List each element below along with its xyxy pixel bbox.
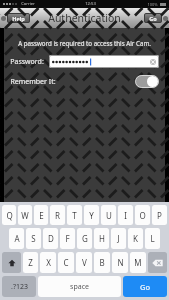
staticText: O (139, 210, 146, 221)
button[interactable]: Clear text (49, 55, 159, 68)
button[interactable]: J (111, 228, 126, 249)
button[interactable]: V (76, 252, 92, 273)
staticText: T (72, 210, 77, 221)
staticText: M (134, 257, 142, 268)
button[interactable]: Shift (2, 252, 21, 273)
button[interactable]: Go (123, 276, 167, 297)
staticText: I (124, 210, 127, 221)
staticText: .?123 (11, 282, 28, 292)
button[interactable]: Clear text (150, 59, 156, 65)
staticText: Go (149, 15, 157, 22)
staticText: L (150, 233, 155, 244)
button[interactable]: Y (84, 205, 99, 225)
staticText: A password is required to access this Ai… (18, 39, 151, 47)
staticText: Authentication (48, 11, 121, 25)
button[interactable]: U (101, 205, 116, 225)
staticText: V (82, 257, 87, 268)
staticText: 100% (147, 2, 158, 7)
staticText: B (99, 257, 105, 268)
staticText: space (70, 282, 89, 292)
button[interactable]: .?123 (2, 276, 36, 297)
button[interactable]: L (145, 228, 160, 249)
button[interactable]: G (77, 228, 92, 249)
button[interactable]: B (94, 252, 110, 273)
button[interactable]: space (38, 276, 121, 297)
button[interactable]: S (26, 228, 41, 249)
staticText: D (48, 233, 54, 244)
staticText: 12:53 (85, 1, 96, 7)
button[interactable]: A (9, 228, 24, 249)
button[interactable]: Q (2, 205, 16, 225)
staticText: R (55, 210, 60, 221)
button[interactable]: P (152, 205, 167, 225)
staticText: Remember It: (10, 77, 56, 87)
button[interactable]: N (112, 252, 128, 273)
staticText: J (117, 233, 120, 244)
button[interactable]: T (67, 205, 82, 225)
staticText: F (65, 233, 70, 244)
staticText: Password: (10, 57, 44, 67)
button[interactable]: Z (23, 252, 38, 273)
staticText: P (157, 210, 162, 221)
button[interactable]: R (50, 205, 65, 225)
staticText: Z (28, 257, 33, 268)
staticText: Go (140, 282, 150, 292)
staticText: G (82, 233, 88, 244)
button[interactable]: W (18, 205, 32, 225)
button[interactable]: X (40, 252, 56, 273)
button[interactable]: Remember It toggle (135, 75, 159, 88)
button[interactable]: E (34, 205, 48, 225)
button[interactable]: I (118, 205, 133, 225)
staticText: E (39, 210, 44, 221)
button[interactable]: D (43, 228, 58, 249)
staticText: U (106, 210, 112, 221)
staticText: A (14, 233, 20, 244)
button[interactable]: O (135, 205, 150, 225)
staticText: X (46, 257, 51, 268)
button[interactable]: Backspace (148, 252, 167, 273)
staticText: Help (12, 15, 25, 22)
staticText: Carrier (21, 1, 35, 7)
button[interactable]: Go (144, 13, 162, 23)
staticText: N (117, 257, 124, 268)
staticText: Y (89, 210, 94, 221)
staticText: S (31, 233, 36, 244)
staticText: C (63, 257, 69, 268)
button[interactable]: K (128, 228, 143, 249)
button[interactable]: M (130, 252, 146, 273)
button[interactable]: H (94, 228, 109, 249)
staticText: Q (6, 210, 13, 221)
button[interactable]: Help (7, 13, 30, 23)
button[interactable]: C (58, 252, 74, 273)
staticText: K (133, 233, 138, 244)
staticText: H (99, 233, 105, 244)
staticText: W (21, 210, 29, 221)
button[interactable]: F (60, 228, 75, 249)
